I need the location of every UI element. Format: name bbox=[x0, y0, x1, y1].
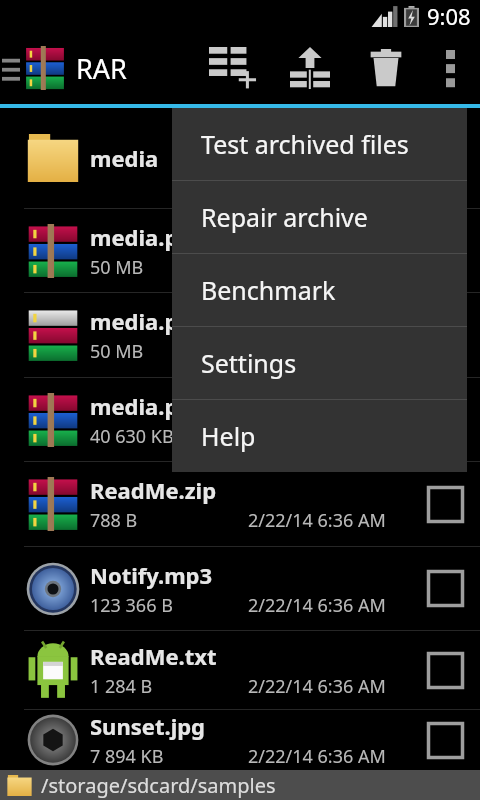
staticText: ReadMe.zip bbox=[90, 475, 217, 505]
button[interactable]: media bbox=[0, 108, 480, 208]
staticText: Help bbox=[201, 419, 256, 453]
staticText: Notify.mp3 bbox=[90, 560, 213, 590]
staticText: media.part2.rar bbox=[90, 306, 263, 336]
staticText: media bbox=[90, 143, 159, 173]
staticText: media.part1.rar bbox=[90, 222, 263, 252]
staticText: Settings bbox=[201, 346, 297, 380]
staticText: 50 MB bbox=[90, 255, 144, 280]
button[interactable]: Open navigation drawer, RAR bbox=[0, 40, 133, 96]
staticText: media.part3.rar bbox=[90, 391, 263, 421]
button[interactable]: Help bbox=[172, 400, 467, 472]
button[interactable]: Settings bbox=[172, 327, 467, 399]
button[interactable]: Benchmark bbox=[172, 254, 467, 326]
staticText: Repair archive bbox=[201, 200, 368, 234]
button[interactable]: Select Notify.mp3 bbox=[410, 547, 480, 630]
button[interactable]: Extract files bbox=[272, 32, 348, 104]
staticText: 9:08 bbox=[427, 1, 471, 31]
button[interactable]: Test archived files bbox=[172, 108, 467, 180]
button[interactable]: Repair archive bbox=[172, 181, 467, 253]
button[interactable]: media.part3.rar bbox=[0, 378, 480, 461]
staticText: 788 B bbox=[90, 508, 138, 533]
staticText: RAR bbox=[76, 50, 127, 87]
button[interactable]: /storage/sdcard/samples bbox=[0, 770, 480, 800]
staticText: Sunset.jpg bbox=[90, 711, 205, 741]
staticText: Test archived files bbox=[201, 127, 409, 161]
button[interactable]: media.part2.rar bbox=[0, 293, 480, 377]
staticText: /storage/sdcard/samples bbox=[41, 772, 276, 799]
button[interactable]: Notify.mp3 bbox=[0, 547, 480, 630]
button[interactable]: More options bbox=[424, 32, 476, 104]
button[interactable]: Sunset.jpg bbox=[0, 710, 480, 770]
button[interactable]: Select ReadMe.txt bbox=[410, 631, 480, 709]
button[interactable]: ReadMe.txt bbox=[0, 631, 480, 709]
staticText: 2/22/14 6:36 AM bbox=[248, 744, 386, 769]
staticText: 1 284 B bbox=[90, 674, 153, 699]
staticText: 7 894 KB bbox=[90, 744, 164, 769]
staticText: 2/22/14 6:36 AM bbox=[248, 593, 386, 618]
button[interactable]: ReadMe.zip bbox=[0, 462, 480, 546]
staticText: 40 630 KB bbox=[90, 424, 174, 449]
button[interactable]: Delete bbox=[348, 32, 424, 104]
staticText: Benchmark bbox=[201, 273, 336, 307]
staticText: 2/22/14 6:36 AM bbox=[248, 674, 386, 699]
staticText: 123 366 B bbox=[90, 593, 173, 618]
staticText: 2/22/14 6:36 AM bbox=[248, 508, 386, 533]
button[interactable]: Add to archive bbox=[194, 32, 272, 104]
staticText: ReadMe.txt bbox=[90, 641, 217, 671]
button[interactable]: Select Sunset.jpg bbox=[410, 710, 480, 770]
button[interactable]: media.part1.rar bbox=[0, 209, 480, 292]
staticText: 50 MB bbox=[90, 339, 144, 364]
button[interactable]: Select ReadMe.zip bbox=[410, 462, 480, 546]
